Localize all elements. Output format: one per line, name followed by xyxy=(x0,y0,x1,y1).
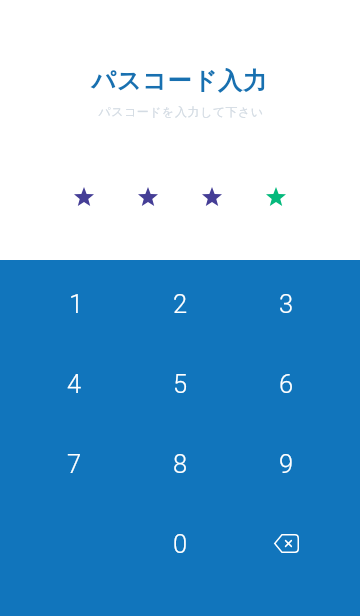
button[interactable]: 1 xyxy=(21,260,127,340)
button[interactable]: 0 xyxy=(127,500,233,580)
staticText: 6 xyxy=(279,369,294,399)
staticText: 3 xyxy=(279,289,294,319)
staticText: パスコードを入力して下さい xyxy=(98,104,264,119)
button[interactable]: 2 xyxy=(127,260,233,340)
staticText: パスコード入力 xyxy=(91,66,268,96)
button[interactable]: 8 xyxy=(127,420,233,500)
staticText: 9 xyxy=(279,449,294,479)
button[interactable]: 3 xyxy=(233,260,339,340)
button[interactable]: 7 xyxy=(21,420,127,500)
staticText: 1 xyxy=(69,289,84,319)
staticText: 5 xyxy=(173,369,188,399)
staticText: 8 xyxy=(173,449,188,479)
button[interactable]: 9 xyxy=(233,420,339,500)
button[interactable]: 6 xyxy=(233,340,339,420)
button[interactable]: 4 xyxy=(21,340,127,420)
button[interactable]: 5 xyxy=(127,340,233,420)
staticText: 7 xyxy=(67,449,82,479)
button[interactable]: Delete last digit xyxy=(233,500,339,580)
staticText: 2 xyxy=(173,289,188,319)
staticText: 4 xyxy=(67,369,82,399)
staticText: 0 xyxy=(173,529,188,559)
